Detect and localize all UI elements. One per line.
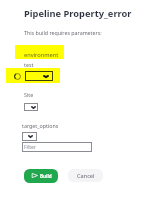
button[interactable]: Cancel [68, 169, 103, 182]
staticText: This build requires parameters: [24, 29, 102, 36]
staticText: environment [24, 51, 59, 59]
staticText: Pipeline Property_error [24, 7, 132, 20]
button[interactable]: Build [24, 169, 58, 183]
button[interactable]: Select option [24, 103, 38, 111]
staticText: test [24, 61, 34, 68]
staticText: Cancel [77, 172, 95, 180]
button[interactable]: Radio option [14, 73, 21, 80]
staticText: Filter [24, 144, 36, 151]
staticText: Site [24, 91, 34, 98]
button[interactable]: Select option [25, 71, 53, 81]
staticText: target_options [22, 122, 59, 129]
button[interactable]: Select option [22, 132, 37, 141]
button[interactable]: Filter [22, 142, 92, 152]
staticText: Build [40, 173, 52, 179]
button[interactable] [15, 45, 64, 59]
